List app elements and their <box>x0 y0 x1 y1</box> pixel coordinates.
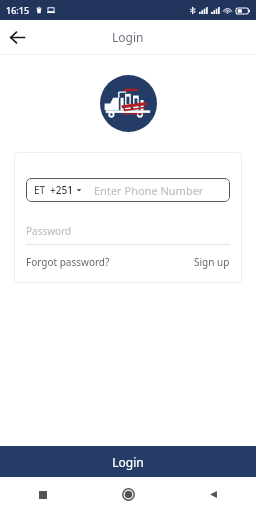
staticText: Password <box>26 224 72 238</box>
button[interactable]: Recent apps <box>0 477 86 512</box>
staticText: +251 <box>50 183 73 197</box>
button[interactable]: Password <box>26 224 230 245</box>
button[interactable]: ET <box>26 178 230 202</box>
staticText: Login <box>112 454 144 470</box>
staticText: Sign up <box>194 255 230 269</box>
button[interactable]: Login <box>0 446 256 477</box>
button[interactable]: Back <box>171 477 256 512</box>
staticText: Login <box>112 29 144 45</box>
staticText: Enter Phone Number <box>94 183 204 198</box>
staticText: 16:15 <box>6 4 30 16</box>
staticText: Forgot password? <box>26 255 110 269</box>
button[interactable]: Home <box>86 477 171 512</box>
button[interactable]: Sign up <box>194 255 230 269</box>
button[interactable]: Forgot password? <box>26 255 110 269</box>
button[interactable]: Back <box>0 20 34 54</box>
staticText: ET <box>34 183 46 197</box>
